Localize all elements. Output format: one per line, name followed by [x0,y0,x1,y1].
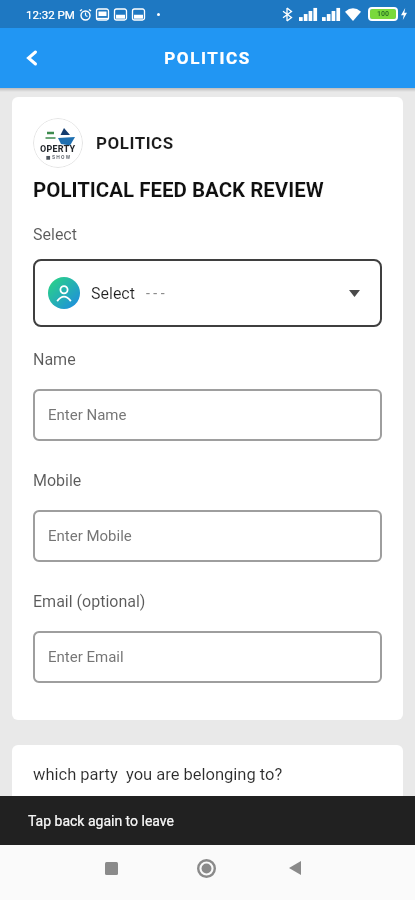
staticText: Select [33,225,77,244]
staticText: Email (optional) [33,592,146,611]
button[interactable]: Enter Mobile [33,510,382,562]
staticText: 12:32 PM [26,8,75,21]
staticText: OPERTY [40,144,76,155]
staticText: ■ S H O W [46,154,71,160]
staticText: Enter Email [48,648,124,666]
staticText: Enter Mobile [48,527,132,545]
button[interactable]: Enter Name [33,389,382,441]
button[interactable] [275,848,315,888]
staticText: Tap back again to leave [28,813,174,829]
staticText: Name [33,350,76,369]
button[interactable]: Enter Email [33,631,382,683]
staticText: which party you are belonging to? [33,765,283,784]
staticText: - - - [146,285,165,301]
staticText: POLITICS [96,133,174,153]
button[interactable] [186,848,226,888]
staticText: 100 [377,10,390,18]
staticText: Mobile [33,471,82,490]
staticText: POLITICS [164,48,251,68]
staticText: POLITICAL FEED BACK REVIEW [33,178,324,202]
staticText: Select [91,284,135,303]
button[interactable] [91,848,131,888]
staticText: Enter Name [48,406,127,424]
button[interactable]: Select [33,259,382,327]
button[interactable] [14,40,50,76]
